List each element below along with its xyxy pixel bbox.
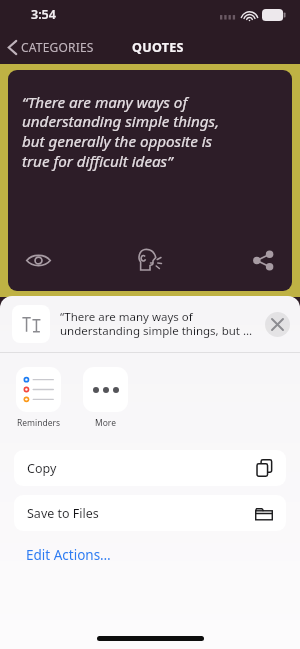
staticText: 3:54 [31,6,56,23]
button[interactable]: Reminders [14,365,63,431]
button[interactable]: Save to Files [14,495,286,531]
staticText: “There are many ways of understanding si… [60,309,257,339]
staticText: More [95,417,116,429]
staticText: Reminders [17,417,61,429]
button[interactable]: “There are many ways of understanding si… [0,296,300,352]
staticText: Save to Files [27,505,255,522]
button[interactable]: View [26,253,108,268]
staticText: “There are many ways of understanding si… [22,92,220,172]
staticText: CATEGORIES [21,39,94,55]
staticText: Copy [27,460,256,477]
button[interactable]: QUOTES [128,35,188,60]
button[interactable]: Edit Actions… [14,541,123,569]
button[interactable]: Close [265,312,290,337]
button[interactable]: CATEGORIES [0,35,102,59]
button[interactable]: Speak [108,248,191,273]
button[interactable]: Share [191,250,274,271]
button[interactable]: More [81,365,130,431]
button[interactable]: Copy [14,450,286,486]
